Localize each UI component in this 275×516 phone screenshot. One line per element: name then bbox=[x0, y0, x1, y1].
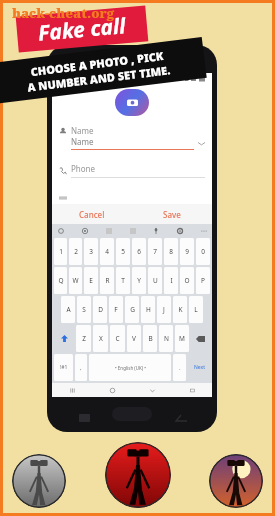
button[interactable]: Emoji panel bbox=[56, 226, 65, 235]
button[interactable]: More bbox=[199, 226, 208, 235]
staticText: F bbox=[114, 305, 118, 314]
button[interactable]: Home bbox=[112, 407, 152, 421]
button[interactable]: Backspace bbox=[191, 325, 210, 352]
button[interactable]: D bbox=[93, 296, 107, 323]
button[interactable]: C bbox=[110, 325, 125, 352]
button[interactable]: Back bbox=[132, 383, 172, 397]
button[interactable]: W bbox=[69, 267, 82, 294]
staticText: P bbox=[201, 276, 205, 285]
staticText: Cancel bbox=[79, 209, 105, 220]
button[interactable]: Symbols bbox=[54, 354, 73, 381]
button[interactable]: 8 bbox=[164, 238, 178, 265]
staticText: !#1 bbox=[60, 364, 68, 371]
staticText: 5 bbox=[121, 247, 125, 256]
button[interactable]: 7 bbox=[148, 238, 162, 265]
button[interactable]: Z bbox=[76, 325, 91, 352]
button[interactable]: Phone bbox=[59, 163, 205, 178]
button[interactable]: Settings bbox=[175, 226, 184, 235]
button[interactable]: Pick photo bbox=[115, 89, 149, 116]
staticText: W bbox=[72, 276, 79, 285]
staticText: M bbox=[179, 334, 185, 343]
staticText: 7 bbox=[153, 247, 157, 256]
button[interactable]: 0 bbox=[196, 238, 210, 265]
button[interactable]: Voice input bbox=[151, 226, 160, 235]
staticText: . bbox=[179, 364, 181, 372]
button[interactable]: Period bbox=[173, 354, 186, 381]
button[interactable]: CHOOSE A PHOTO , PICK bbox=[0, 37, 207, 104]
staticText: D bbox=[98, 305, 103, 314]
staticText: N bbox=[164, 334, 169, 343]
button[interactable]: I bbox=[164, 267, 178, 294]
button[interactable]: S bbox=[77, 296, 91, 323]
button[interactable]: Hide keyboard bbox=[172, 383, 212, 397]
button[interactable]: Q bbox=[54, 267, 67, 294]
button[interactable]: 5 bbox=[116, 238, 130, 265]
button[interactable]: Fake call bbox=[16, 5, 148, 53]
button[interactable]: B bbox=[143, 325, 157, 352]
staticText: V bbox=[132, 334, 136, 343]
button[interactable]: U bbox=[148, 267, 162, 294]
button[interactable]: T bbox=[116, 267, 130, 294]
staticText: 2 bbox=[74, 247, 78, 256]
button[interactable]: N bbox=[159, 325, 173, 352]
button[interactable]: Shift bbox=[54, 325, 74, 352]
button[interactable]: A bbox=[61, 296, 75, 323]
button[interactable]: 4 bbox=[100, 238, 114, 265]
button[interactable]: Name bbox=[71, 136, 205, 150]
staticText: L bbox=[194, 305, 198, 314]
staticText: Name bbox=[71, 136, 94, 147]
staticText: 8 bbox=[169, 247, 173, 256]
button[interactable]: Recents bbox=[52, 383, 92, 397]
button[interactable]: Sticker bbox=[80, 226, 89, 235]
button[interactable]: 2 bbox=[69, 238, 82, 265]
button[interactable]: K bbox=[173, 296, 187, 323]
button[interactable]: R bbox=[100, 267, 114, 294]
staticText: Y bbox=[137, 276, 141, 285]
button[interactable]: 9 bbox=[180, 238, 194, 265]
button[interactable]: Cancel bbox=[52, 204, 132, 224]
button[interactable]: H bbox=[141, 296, 155, 323]
staticText: A NUMBER AND SET TIME. bbox=[27, 62, 171, 95]
staticText: U bbox=[153, 276, 158, 285]
button[interactable]: X bbox=[93, 325, 108, 352]
button[interactable]: E bbox=[84, 267, 98, 294]
staticText: G bbox=[130, 305, 135, 314]
button[interactable]: Clipboard bbox=[104, 226, 113, 235]
staticText: 6 bbox=[137, 247, 141, 256]
button[interactable]: 6 bbox=[132, 238, 146, 265]
button[interactable]: O bbox=[180, 267, 194, 294]
button[interactable]: L bbox=[189, 296, 203, 323]
button[interactable]: Siren head theme 1 bbox=[12, 454, 66, 508]
button[interactable]: G bbox=[125, 296, 139, 323]
staticText: Fake call bbox=[37, 11, 127, 48]
staticText: I bbox=[170, 276, 173, 285]
button[interactable]: P bbox=[196, 267, 210, 294]
button[interactable]: Home bbox=[92, 383, 132, 397]
button[interactable]: M bbox=[175, 325, 189, 352]
button[interactable]: Name bbox=[59, 125, 205, 136]
button[interactable]: Space bbox=[89, 354, 171, 381]
button[interactable]: Siren head theme 2 bbox=[105, 442, 171, 508]
button[interactable]: 3 bbox=[84, 238, 98, 265]
staticText: 9 bbox=[185, 247, 189, 256]
button[interactable]: V bbox=[127, 325, 141, 352]
button[interactable]: 1 bbox=[54, 238, 67, 265]
button[interactable]: F bbox=[109, 296, 123, 323]
staticText: J bbox=[163, 305, 165, 314]
staticText: O bbox=[184, 276, 190, 285]
staticText: 1 bbox=[59, 247, 63, 256]
staticText: K bbox=[178, 305, 183, 314]
button[interactable]: Siren head theme 3 bbox=[209, 454, 263, 508]
staticText: A bbox=[66, 305, 71, 314]
staticText: Q bbox=[58, 276, 64, 285]
button[interactable]: Y bbox=[132, 267, 146, 294]
button[interactable]: Save bbox=[132, 204, 212, 224]
staticText: Name bbox=[71, 125, 94, 136]
staticText: Z bbox=[82, 334, 86, 343]
staticText: R bbox=[105, 276, 110, 285]
button[interactable]: Next bbox=[188, 354, 210, 381]
button[interactable]: Comma bbox=[75, 354, 87, 381]
button[interactable]: J bbox=[157, 296, 171, 323]
button[interactable] bbox=[59, 194, 205, 202]
button[interactable]: Translate bbox=[128, 226, 137, 235]
